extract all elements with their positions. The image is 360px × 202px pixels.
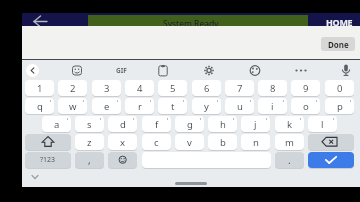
staticText: 4 (137, 82, 143, 95)
staticText: i (271, 100, 274, 113)
button[interactable]: l (308, 116, 337, 132)
button[interactable]: 9 (291, 80, 320, 96)
staticText: u (237, 100, 243, 113)
staticText: t (171, 100, 175, 113)
button[interactable] (108, 152, 137, 168)
button[interactable]: 3 (92, 80, 121, 96)
staticText: x (120, 136, 126, 149)
button[interactable]: g (175, 116, 204, 132)
staticText: Done (328, 39, 349, 50)
button[interactable]: s (75, 116, 104, 132)
staticText: g (187, 118, 193, 131)
button[interactable] (291, 60, 311, 81)
button[interactable]: . (275, 152, 304, 168)
button[interactable]: i (258, 98, 287, 114)
button[interactable]: w (58, 98, 87, 114)
staticText: b (220, 136, 226, 149)
staticText: q (37, 100, 43, 113)
button[interactable]: q (25, 98, 54, 114)
staticText: v (187, 136, 192, 149)
button[interactable]: z (75, 134, 104, 150)
staticText: d (120, 118, 126, 131)
staticText: a (54, 118, 60, 131)
button[interactable]: r (125, 98, 154, 114)
staticText: 8 (270, 82, 276, 95)
staticText: 5 (170, 82, 176, 95)
staticText: 1 (37, 82, 43, 95)
button[interactable]: 7 (225, 80, 254, 96)
button[interactable]: o (291, 98, 320, 114)
button[interactable]: GIF (111, 63, 131, 78)
staticText: c (154, 136, 159, 149)
staticText: ?123 (40, 155, 56, 165)
staticText: j (254, 118, 257, 131)
button[interactable]: j (241, 116, 270, 132)
staticText: s (87, 118, 92, 131)
button[interactable]: y (192, 98, 221, 114)
button[interactable] (308, 152, 354, 168)
button[interactable]: t (158, 98, 187, 114)
staticText: w (69, 100, 77, 113)
button[interactable]: m (275, 134, 304, 150)
button[interactable]: a (42, 116, 71, 132)
staticText: 7 (237, 82, 243, 95)
staticText: HOME (326, 16, 353, 28)
button[interactable]: 4 (125, 80, 154, 96)
staticText: y (204, 100, 209, 113)
button[interactable]: 6 (192, 80, 221, 96)
button[interactable] (245, 60, 265, 81)
button[interactable]: 5 (158, 80, 187, 96)
button[interactable]: c (142, 134, 171, 150)
button[interactable]: e (92, 98, 121, 114)
button[interactable]: h (208, 116, 237, 132)
staticText: 2 (70, 82, 76, 95)
button[interactable]: 8 (258, 80, 287, 96)
button[interactable]: p (325, 98, 354, 114)
button[interactable]: 2 (58, 80, 87, 96)
button[interactable]: v (175, 134, 204, 150)
button[interactable]: b (208, 134, 237, 150)
staticText: k (287, 118, 293, 131)
staticText: 0 (337, 82, 343, 95)
button[interactable] (336, 60, 356, 81)
button[interactable]: , (75, 152, 104, 168)
button[interactable]: ?123 (25, 152, 71, 168)
button[interactable]: f (142, 116, 171, 132)
staticText: . (288, 153, 291, 167)
button[interactable]: Done (321, 37, 355, 51)
button[interactable]: u (225, 98, 254, 114)
staticText: p (337, 100, 343, 113)
button[interactable] (67, 60, 87, 81)
button[interactable]: d (108, 116, 137, 132)
staticText: m (285, 136, 294, 149)
button[interactable]: n (241, 134, 270, 150)
staticText: GIF (116, 66, 127, 75)
staticText: o (303, 100, 309, 113)
button[interactable]: 0 (325, 80, 354, 96)
button[interactable]: 1 (25, 80, 54, 96)
button[interactable]: x (108, 134, 137, 150)
staticText: 3 (104, 82, 110, 95)
button[interactable] (199, 60, 219, 81)
staticText: h (220, 118, 226, 131)
button[interactable] (153, 60, 173, 81)
staticText: e (104, 100, 110, 113)
button[interactable]: k (275, 116, 304, 132)
button[interactable] (25, 134, 71, 150)
staticText: , (88, 153, 91, 167)
button[interactable] (23, 60, 43, 81)
staticText: n (253, 136, 259, 149)
staticText: r (138, 100, 142, 113)
staticText: z (87, 136, 92, 149)
staticText: l (321, 118, 324, 131)
button[interactable] (308, 134, 354, 150)
staticText: f (155, 118, 159, 131)
button[interactable] (28, 13, 54, 28)
button[interactable]: HOME (318, 15, 360, 28)
staticText: System Ready (163, 18, 219, 29)
staticText: 9 (303, 82, 309, 95)
staticText: 6 (204, 82, 210, 95)
